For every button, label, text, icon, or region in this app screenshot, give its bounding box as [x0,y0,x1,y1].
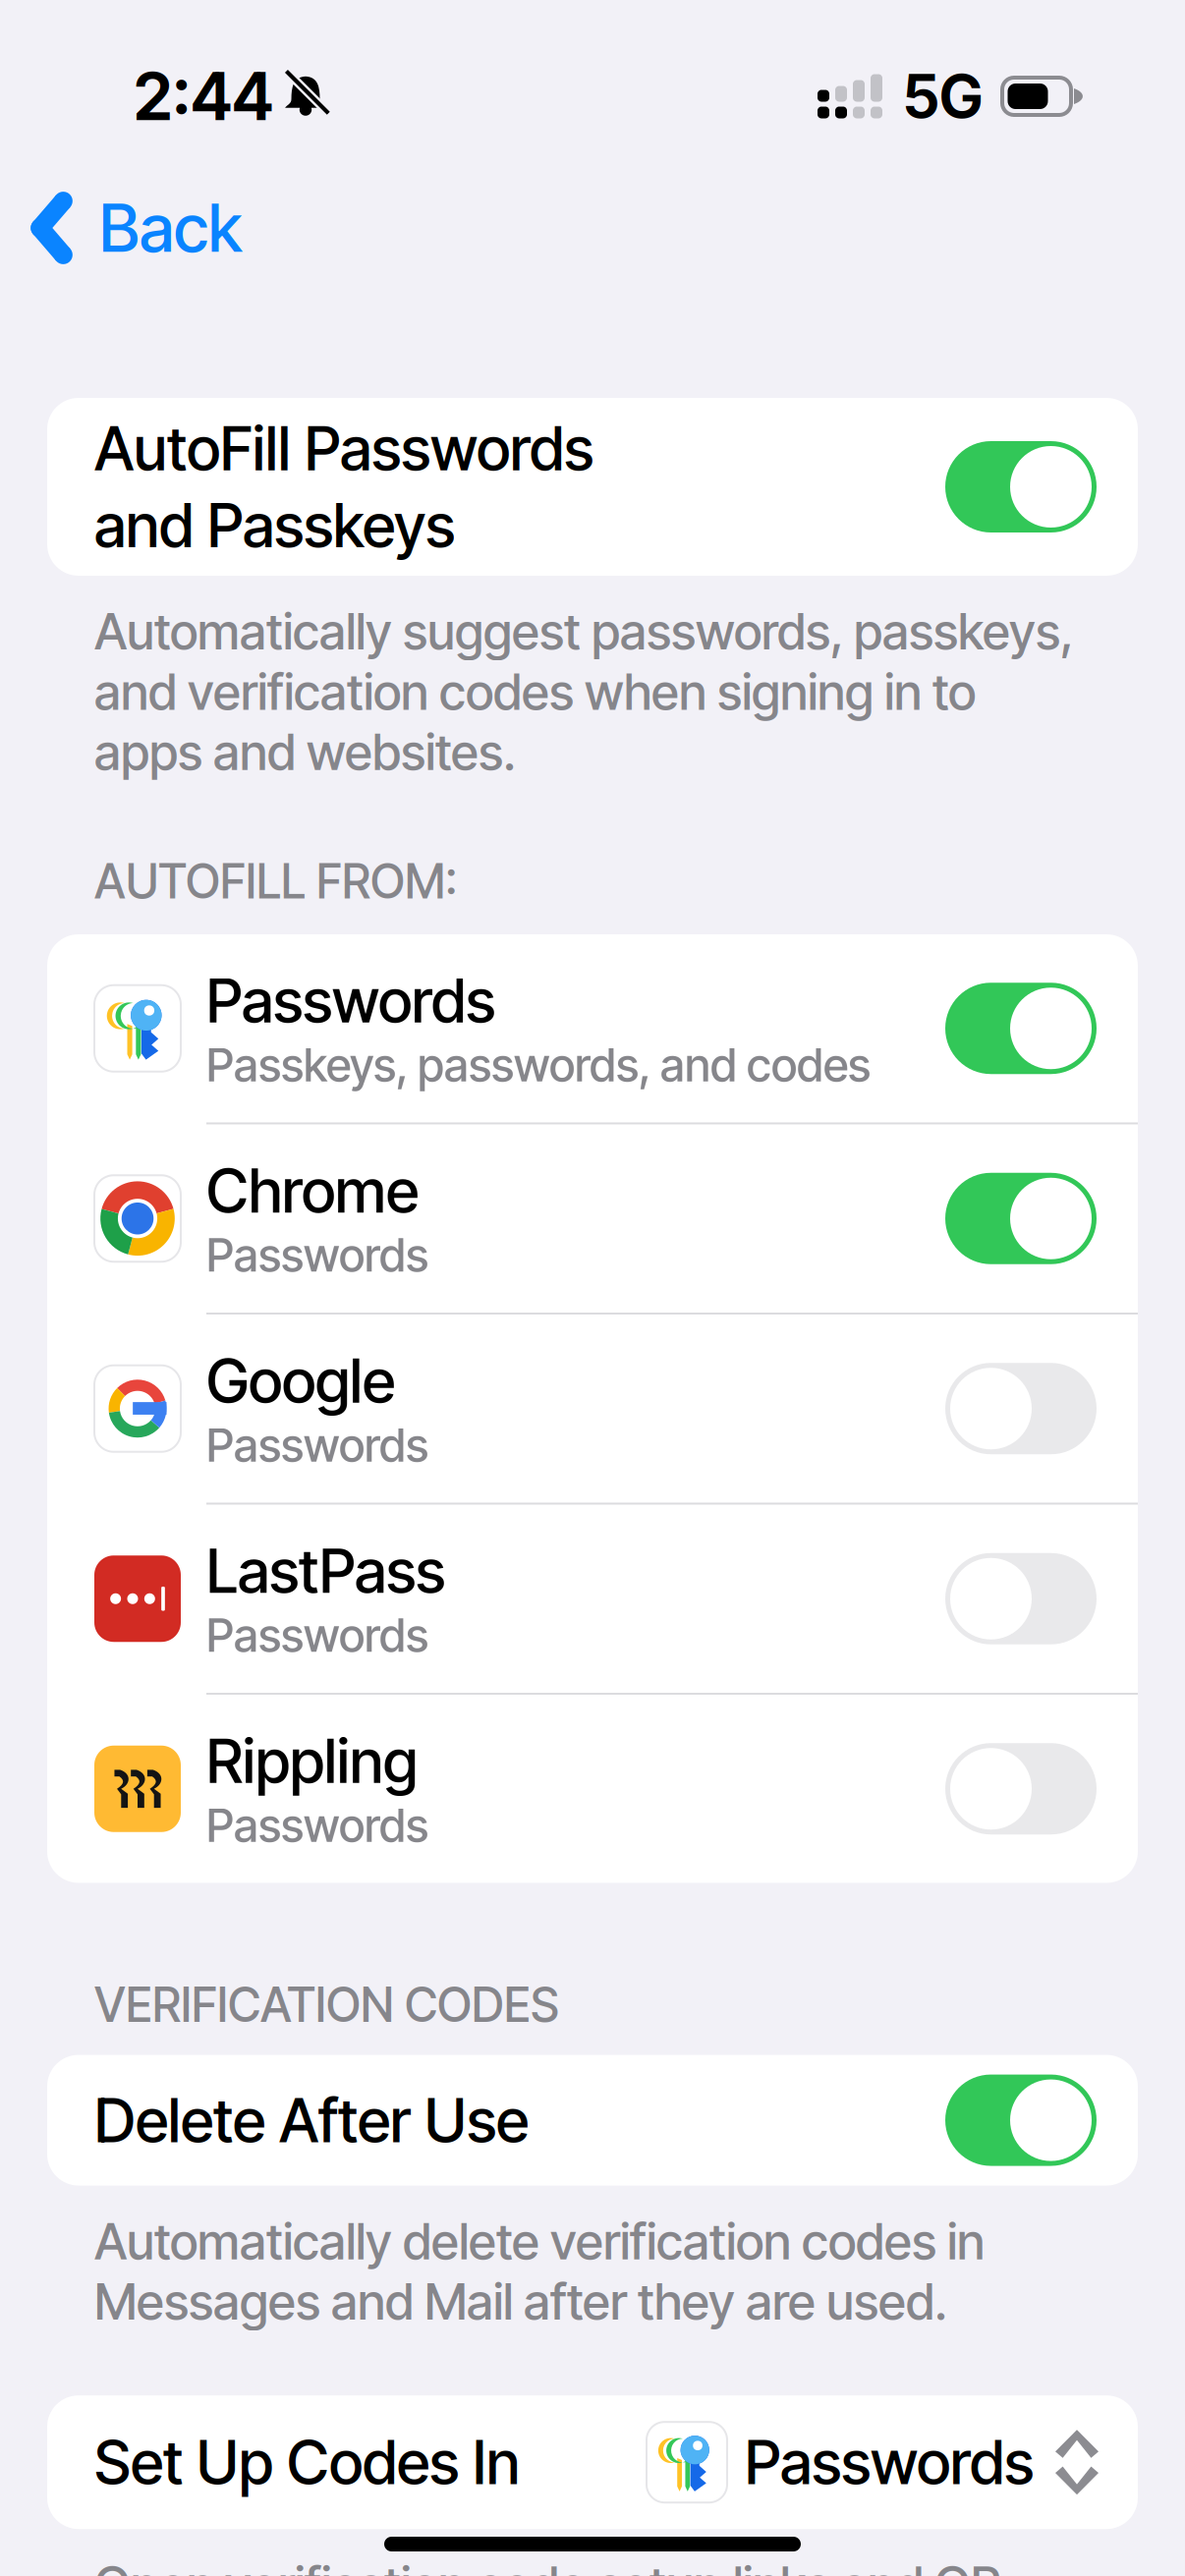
button[interactable]: Set Up Codes In [47,2395,1138,2529]
staticText: Chrome [206,1154,419,1227]
staticText: Passwords [745,2426,1034,2499]
button[interactable]: LastPass [47,1505,1138,1693]
staticText: Passwords [206,1227,428,1283]
staticText: AUTOFILL FROM: [94,853,457,910]
staticText: LastPass [206,1534,445,1607]
staticText: and Passkeys [94,489,455,562]
button[interactable]: Google [47,1315,1138,1503]
staticText: Delete After Use [94,2084,529,2157]
staticText: Back [99,188,242,268]
staticText: Passkeys, passwords, and codes [206,1037,871,1093]
button[interactable]: Rippling [47,1695,1138,1883]
staticText: Rippling [206,1725,418,1798]
staticText: Passwords [206,1417,428,1473]
staticText: Passwords [206,1607,428,1663]
staticText: 2:44 [134,57,273,136]
staticText: Google [206,1344,395,1417]
staticText: Open verification code setup links and Q… [94,2555,1001,2576]
button[interactable]: Delete After Use [47,2055,1138,2186]
button[interactable]: Passwords [47,934,1138,1122]
staticText: AutoFill Passwords [94,412,593,485]
staticText: Passwords [206,964,495,1037]
button[interactable]: Chrome [47,1124,1138,1313]
staticText: VERIFICATION CODES [94,1976,559,2033]
staticText: Set Up Codes In [94,2426,520,2499]
staticText: Passwords [206,1798,428,1853]
staticText: 5G [903,60,983,133]
button[interactable]: AutoFill Passwords [47,398,1138,576]
staticText: Automatically suggest passwords, passkey… [94,601,1073,782]
button[interactable]: Back [0,193,265,263]
staticText: Automatically delete verification codes … [94,2211,985,2332]
